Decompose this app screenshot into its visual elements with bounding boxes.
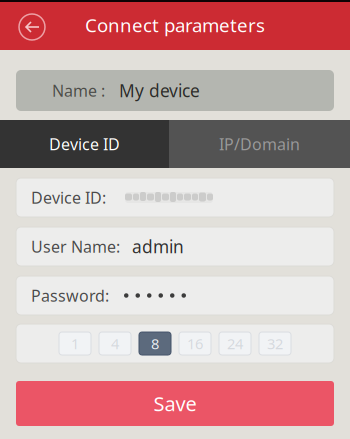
- button[interactable]: User Name:: [16, 227, 334, 266]
- button[interactable]: Device ID:: [16, 178, 334, 217]
- button[interactable]: Device ID: [0, 120, 169, 168]
- button[interactable]: Back: [17, 0, 47, 51]
- button[interactable]: 16: [179, 332, 211, 355]
- button[interactable]: Save: [16, 381, 334, 426]
- staticText: admin: [132, 235, 184, 258]
- button[interactable]: Password:: [16, 276, 334, 315]
- staticText: Device ID: [49, 133, 120, 155]
- staticText: 24: [227, 334, 243, 353]
- button[interactable]: Name :: [16, 70, 334, 111]
- staticText: 4: [111, 334, 119, 353]
- button[interactable]: 8: [139, 332, 171, 355]
- staticText: 32: [267, 334, 283, 353]
- staticText: Save: [153, 390, 196, 417]
- staticText: Connect parameters: [85, 13, 265, 37]
- button[interactable]: 32: [259, 332, 291, 355]
- staticText: My device: [119, 79, 200, 102]
- button[interactable]: IP/Domain: [169, 120, 350, 168]
- button[interactable]: 24: [219, 332, 251, 355]
- staticText: IP/Domain: [219, 133, 300, 155]
- staticText: Password:: [31, 285, 109, 306]
- staticText: 1: [71, 334, 79, 353]
- staticText: Device ID:: [31, 187, 106, 208]
- staticText: 16: [187, 334, 203, 353]
- staticText: Name :: [52, 80, 105, 101]
- staticText: User Name:: [31, 236, 120, 257]
- button[interactable]: 4: [99, 332, 131, 355]
- button[interactable]: 1: [59, 332, 91, 355]
- staticText: 8: [151, 334, 159, 353]
